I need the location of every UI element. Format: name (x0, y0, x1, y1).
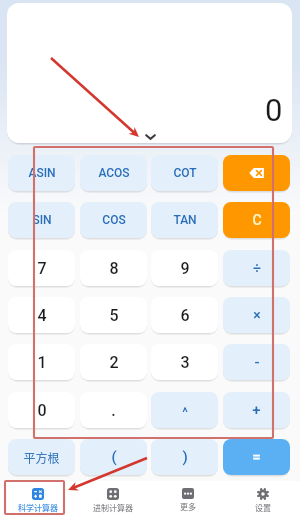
button[interactable]: 0 (7, 3, 292, 143)
button[interactable]: 2 (80, 344, 147, 380)
button[interactable]: Settings (225, 481, 300, 516)
button[interactable]: 8 (80, 250, 147, 286)
staticText: 进制计算器 (93, 502, 133, 514)
staticText: 0 (37, 401, 47, 420)
button[interactable]: ÷ (223, 250, 290, 286)
button[interactable]: Backspace (223, 155, 290, 191)
staticText: 5 (109, 306, 119, 325)
button[interactable]: ACOS (80, 155, 147, 191)
button[interactable]: TAN (151, 202, 218, 238)
staticText: 更多 (180, 501, 196, 513)
button[interactable]: 0 (8, 392, 75, 428)
button[interactable]: 6 (151, 297, 218, 333)
staticText: ACOS (98, 166, 130, 180)
button[interactable]: 1 (8, 344, 75, 380)
staticText: COS (102, 213, 126, 227)
button[interactable]: 3 (151, 344, 218, 380)
button[interactable]: ( (80, 439, 147, 475)
staticText: 7 (37, 259, 47, 278)
button[interactable]: = (223, 439, 290, 475)
button[interactable]: Scientific calculator (0, 481, 75, 516)
button[interactable]: × (223, 297, 290, 333)
button[interactable]: 平方根 (8, 439, 75, 475)
staticText: . (111, 401, 116, 420)
other: More (182, 488, 194, 499)
button[interactable]: C (223, 202, 290, 238)
button[interactable]: 5 (80, 297, 147, 333)
staticText: 平方根 (23, 449, 60, 466)
button[interactable]: ASIN (8, 155, 75, 191)
staticText: 8 (109, 259, 119, 278)
button[interactable]: ^ (151, 392, 218, 428)
staticText: - (254, 353, 260, 371)
button[interactable]: Collapse (138, 125, 162, 149)
staticText: 1 (37, 353, 47, 372)
staticText: 4 (37, 306, 47, 325)
other: Scientific calculator (32, 488, 44, 500)
other: Settings (257, 488, 269, 500)
button[interactable]: COT (151, 155, 218, 191)
staticText: 设置 (255, 502, 271, 514)
button[interactable]: - (223, 344, 290, 380)
button[interactable]: . (80, 392, 147, 428)
button[interactable]: 4 (8, 297, 75, 333)
staticText: 6 (180, 306, 190, 325)
staticText: 9 (180, 259, 190, 278)
staticText: ( (111, 448, 117, 466)
staticText: ^ (182, 405, 188, 420)
staticText: COT (173, 166, 197, 180)
button[interactable]: Base calculator (75, 481, 150, 516)
button[interactable]: 9 (151, 250, 218, 286)
button[interactable]: COS (80, 202, 147, 238)
button[interactable]: ) (151, 439, 218, 475)
button[interactable]: 7 (8, 250, 75, 286)
other: Base calculator (107, 488, 119, 500)
staticText: SIN (32, 213, 52, 227)
button[interactable]: More (150, 481, 225, 516)
button[interactable]: SIN (8, 202, 75, 238)
staticText: C (252, 212, 262, 228)
staticText: ) (182, 448, 188, 466)
staticText: 科学计算器 (18, 502, 58, 514)
staticText: 3 (180, 353, 190, 372)
staticText: ASIN (28, 166, 56, 180)
staticText: TAN (173, 213, 197, 227)
other: Backspace (249, 167, 265, 179)
staticText: + (252, 401, 261, 419)
staticText: = (252, 448, 261, 466)
staticText: 0 (265, 92, 283, 128)
button[interactable]: + (223, 392, 290, 428)
staticText: 2 (109, 353, 119, 372)
staticText: × (253, 307, 261, 323)
staticText: ÷ (253, 260, 261, 276)
